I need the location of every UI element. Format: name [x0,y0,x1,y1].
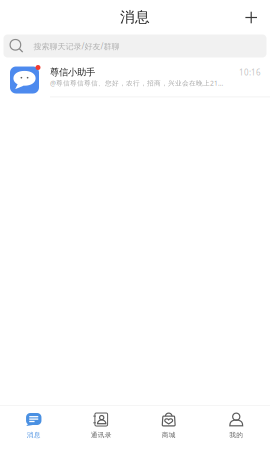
staticText: 消息 [120,8,150,26]
staticText: 消息 [27,431,41,439]
staticText: 通讯录 [91,431,112,439]
staticText: 搜索聊天记录/好友/群聊 [33,41,119,51]
button[interactable]: 消息 [0,406,67,450]
button[interactable]: 通讯录 [67,406,135,450]
staticText: 尊信小助手 [50,66,95,78]
staticText: @尊信尊信尊信、您好，农行，招商，兴业会在晚上21… [50,79,223,87]
button[interactable]: 尊信小助手 [0,65,270,96]
staticText: 10:16 [239,67,261,78]
staticText: 商城 [162,431,176,439]
staticText: 我的 [229,431,243,439]
button[interactable]: Search [0,32,270,65]
button[interactable]: New chat [236,3,270,29]
button[interactable]: 商城 [135,406,202,450]
button[interactable]: 我的 [202,406,270,450]
